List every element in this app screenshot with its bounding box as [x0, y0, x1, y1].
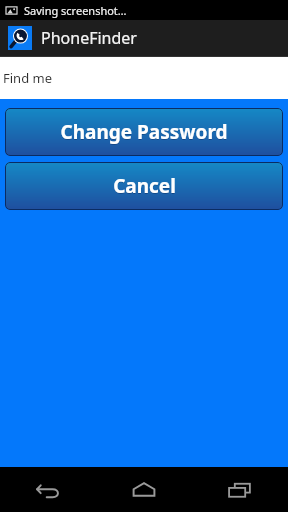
button[interactable]: Cancel — [5, 162, 283, 210]
button[interactable]: Back — [0, 467, 96, 512]
staticText: Saving screenshot… — [24, 3, 127, 18]
button[interactable]: Change Password — [5, 108, 283, 156]
staticText: Cancel — [113, 173, 176, 199]
staticText: Change Password — [60, 119, 228, 145]
staticText: PhoneFinder — [41, 27, 137, 49]
staticText: Cancel — [113, 174, 176, 200]
button[interactable]: Home — [96, 467, 192, 512]
button[interactable]: Recent apps — [192, 467, 288, 512]
staticText: Change Password — [60, 120, 228, 146]
staticText: Find me — [3, 69, 52, 87]
